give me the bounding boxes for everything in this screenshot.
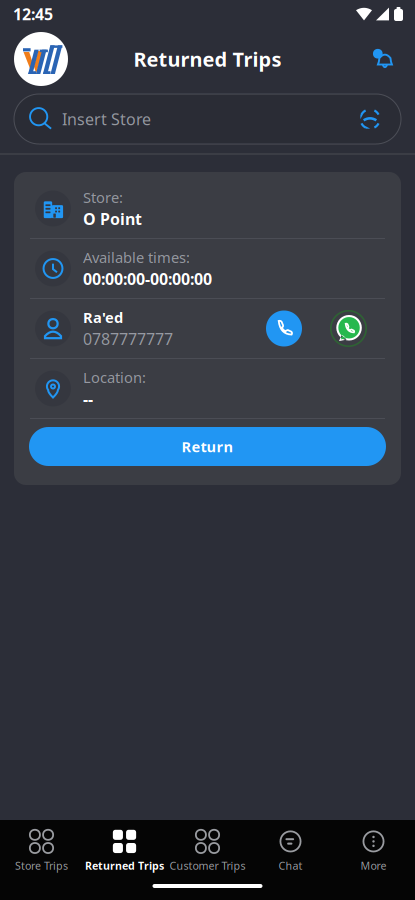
- staticText: Returned Trips: [85, 858, 164, 873]
- staticText: 12:45: [13, 3, 53, 25]
- staticText: More: [360, 858, 386, 873]
- button[interactable]: Store Trips: [0, 827, 83, 875]
- button[interactable]: Returned Trips: [83, 827, 166, 875]
- staticText: 00:00:00-00:00:00: [83, 268, 212, 289]
- button[interactable]: Scan barcode: [356, 105, 384, 133]
- button[interactable]: Customer Trips: [166, 827, 249, 875]
- staticText: Available times:: [83, 248, 190, 267]
- staticText: Ra'ed: [83, 308, 123, 327]
- button[interactable]: More: [332, 827, 415, 875]
- button[interactable]: WhatsApp: [330, 310, 367, 347]
- staticText: Return: [181, 437, 233, 456]
- staticText: Customer Trips: [169, 858, 245, 873]
- staticText: O Point: [83, 208, 142, 229]
- button[interactable]: Notifications: [367, 42, 401, 76]
- staticText: Store Trips: [15, 858, 68, 873]
- staticText: Returned Trips: [133, 46, 281, 72]
- button[interactable]: Return: [29, 427, 386, 466]
- button[interactable]: Chat: [249, 827, 332, 875]
- staticText: Insert Store: [62, 108, 151, 130]
- staticText: Store:: [83, 188, 123, 207]
- staticText: Chat: [278, 858, 302, 873]
- staticText: 0787777777: [83, 328, 173, 349]
- staticText: Location:: [83, 368, 146, 387]
- button[interactable]: Call: [266, 310, 302, 346]
- staticText: --: [83, 388, 93, 409]
